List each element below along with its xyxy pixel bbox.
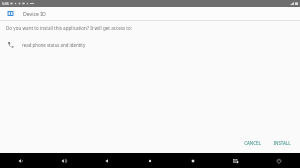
staticText: 6:06 (2, 1, 9, 6)
button[interactable]: Volume up (42, 153, 85, 168)
button[interactable]: Recent apps (171, 153, 214, 168)
staticText: read phone status and identity (22, 42, 86, 48)
button[interactable]: INSTALL (270, 138, 294, 148)
button[interactable]: Power (257, 153, 300, 168)
other: Phone permission (7, 41, 14, 48)
button[interactable]: Back (85, 153, 128, 168)
button[interactable]: Home (128, 153, 171, 168)
staticText: CANCEL (244, 140, 261, 146)
button[interactable]: Volume down (0, 153, 42, 168)
button[interactable]: Screenshot (214, 153, 257, 168)
staticText: Device ID (23, 10, 46, 17)
staticText: Do you want to install this application?… (6, 25, 133, 31)
button[interactable]: CANCEL (241, 138, 264, 148)
staticText: INSTALL (273, 140, 291, 146)
button[interactable]: Phone permission (0, 39, 300, 50)
